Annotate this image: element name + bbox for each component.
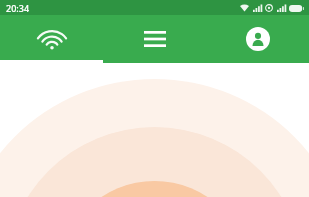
staticText: 20:34 (6, 2, 30, 14)
button[interactable]: Wi-Fi (0, 15, 103, 63)
button[interactable]: Account (206, 15, 309, 63)
other: Wi-Fi (39, 29, 65, 50)
other: Account (246, 27, 270, 51)
other: Menu (144, 31, 166, 47)
button[interactable]: Menu (103, 15, 206, 63)
